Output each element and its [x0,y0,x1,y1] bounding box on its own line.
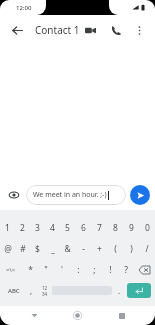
button[interactable]: Backspace [134,259,155,280]
staticText: 0 [145,222,150,234]
button[interactable]: Recent apps [112,306,131,325]
staticText: . [118,285,121,296]
staticText: ) [130,243,133,255]
button[interactable]: 9 [123,217,139,238]
staticText: 2 [20,222,25,234]
button[interactable]: 1 [0,217,15,238]
button[interactable]: =\< [0,259,22,280]
button[interactable]: ' [54,259,70,280]
staticText: 5 [65,222,70,234]
staticText: We meet in an hour. ;-) [33,190,107,200]
staticText: : [77,264,80,276]
staticText: 4 [50,222,55,234]
staticText: + [97,243,102,255]
staticText: , [30,285,33,296]
staticText: $ [35,243,40,255]
button[interactable]: " [38,259,54,280]
button[interactable]: 3 [30,217,45,238]
button[interactable]: 2 [15,217,30,238]
staticText: ( [114,243,117,255]
button[interactable]: , [24,280,38,301]
staticText: _ [51,243,55,255]
button[interactable]: Send [130,185,150,205]
button[interactable]: $ [30,238,45,259]
button[interactable]: More options [130,21,148,39]
button[interactable]: Enter [127,283,151,298]
button[interactable]: ( [107,238,123,259]
button[interactable]: & [60,238,75,259]
button[interactable]: - [75,238,91,259]
button[interactable]: 6 [75,217,91,238]
button[interactable]: Back [7,20,27,40]
button[interactable]: / [139,238,155,259]
button[interactable]: Call [106,20,126,40]
button[interactable]: . [112,280,126,301]
staticText: 34 [42,291,48,297]
button[interactable]: Home [68,306,87,325]
button[interactable]: _ [45,238,60,259]
staticText: 1 [5,222,10,234]
button[interactable]: 8 [107,217,123,238]
button[interactable]: : [70,259,86,280]
staticText: =\< [6,266,16,274]
button[interactable]: ABC [3,280,24,301]
button[interactable]: 4 [45,217,60,238]
staticText: ; [93,264,96,276]
staticText: / [145,243,149,255]
staticText: 12:00 [16,4,32,12]
staticText: " [44,264,48,276]
button[interactable]: ! [102,259,118,280]
button[interactable]: + [91,238,107,259]
staticText: 9 [129,222,134,234]
staticText: 3 [35,222,40,234]
button[interactable]: # [15,238,30,259]
staticText: @ [4,243,12,255]
button[interactable]: Numbers [38,280,52,301]
staticText: ? [124,264,128,276]
staticText: - [82,243,85,255]
button[interactable]: ? [118,259,134,280]
button[interactable]: * [22,259,38,280]
staticText: 12 [42,285,48,291]
button[interactable]: ) [123,238,139,259]
button[interactable]: Video call [80,20,100,40]
staticText: # [20,243,26,255]
staticText: ! [109,264,112,276]
button[interactable]: 7 [91,217,107,238]
button[interactable]: 5 [60,217,75,238]
staticText: ABC [8,287,20,295]
staticText: * [28,264,33,276]
staticText: & [64,243,71,255]
button[interactable]: @ [0,238,15,259]
button[interactable]: Stickers [5,186,23,204]
staticText: 6 [81,222,86,234]
button[interactable]: ; [86,259,102,280]
button[interactable]: 0 [139,217,155,238]
button[interactable]: Back [25,306,44,325]
button[interactable]: We meet in an hour. ;-) [26,185,126,205]
staticText: 7 [97,222,102,234]
staticText: Contact 1 [35,23,80,37]
staticText: ' [61,264,63,276]
staticText: 8 [113,222,118,234]
